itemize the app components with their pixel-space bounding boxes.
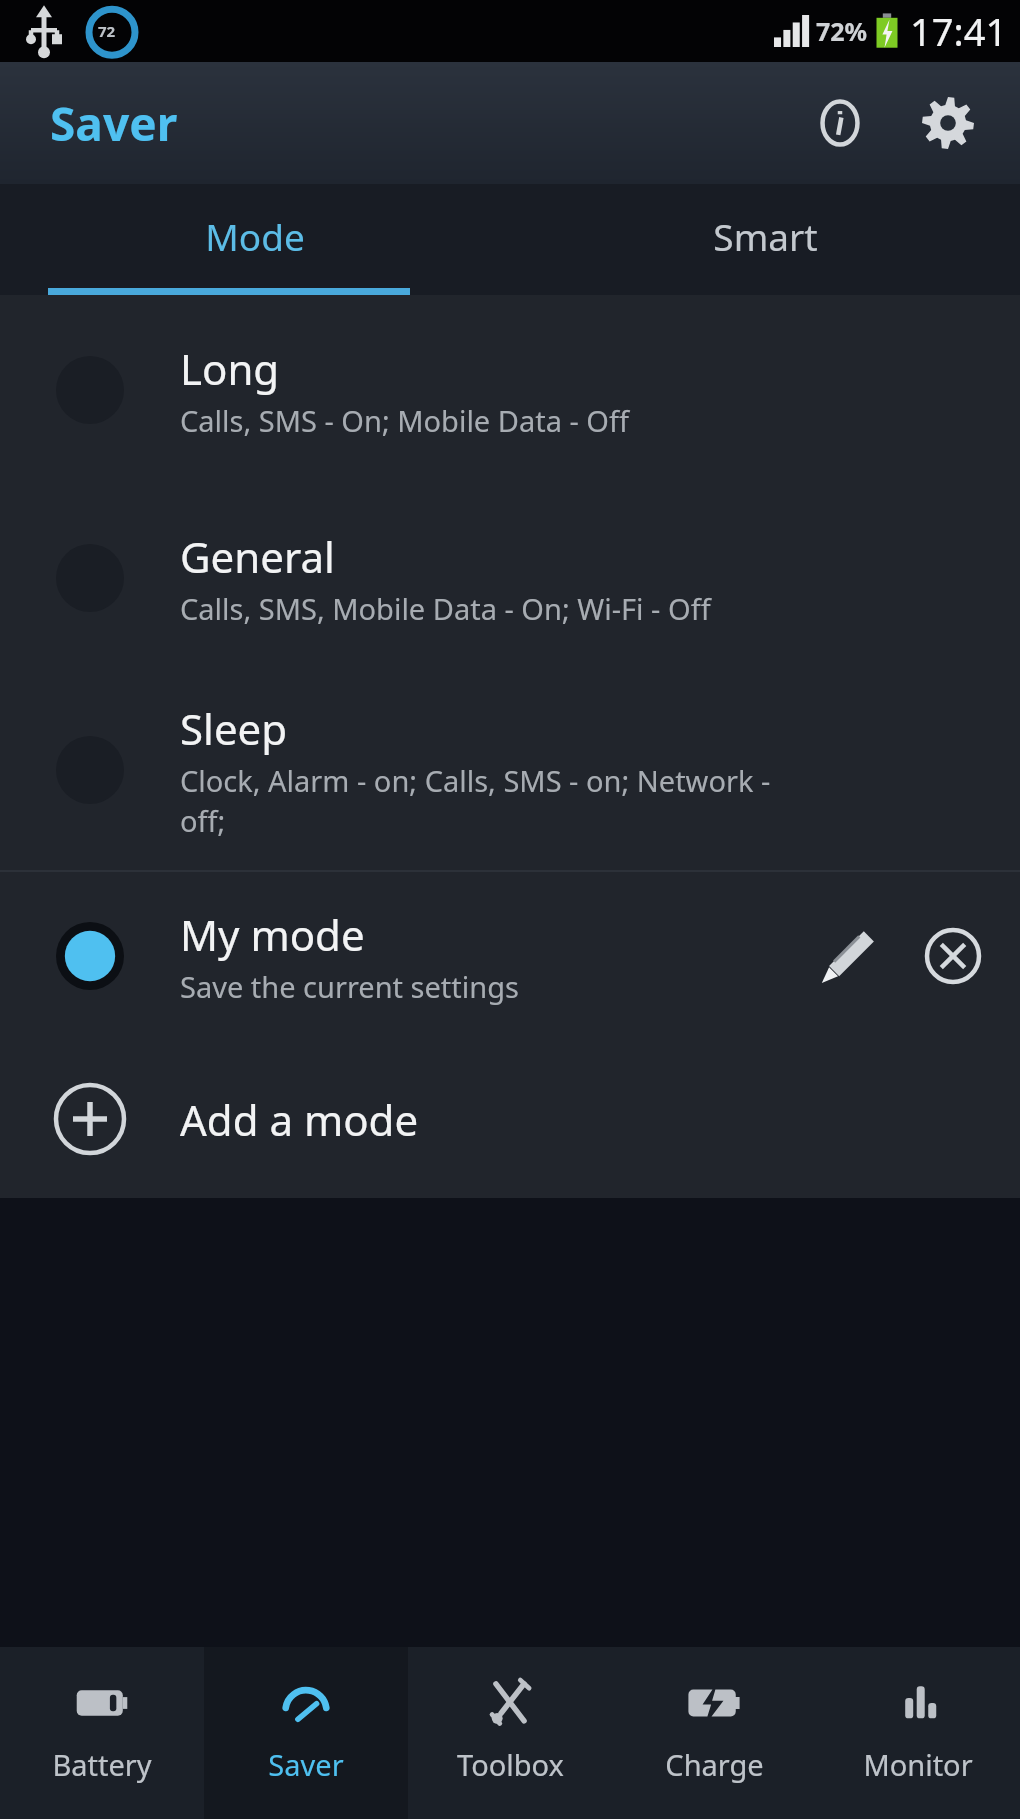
staticText: Calls, SMS - On; Mobile Data - Off [180,401,629,440]
button[interactable]: Info [796,79,884,167]
button[interactable]: Monitor [816,1647,1020,1819]
staticText: Save the current settings [180,967,519,1006]
staticText: My mode [180,906,365,963]
button[interactable]: Sleep [0,670,1020,870]
staticText: Mode [205,211,305,261]
staticText: Smart [713,211,818,261]
button[interactable]: Delete mode [900,903,1006,1009]
button[interactable]: Charge [612,1647,816,1819]
staticText: Saver [50,92,178,155]
staticText: Clock, Alarm - on; Calls, SMS - on; Netw… [180,761,771,841]
staticText: Add a mode [180,1091,419,1148]
staticText: Long [180,340,280,397]
staticText: Charge [665,1745,764,1784]
staticText: 72 [98,21,116,41]
button[interactable]: Add a mode [0,1040,1020,1198]
staticText: Saver [268,1745,344,1784]
staticText: Toolbox [457,1745,564,1784]
staticText: Calls, SMS, Mobile Data - On; Wi-Fi - Of… [180,589,711,628]
staticText: General [180,528,335,585]
button[interactable]: General [0,485,1020,670]
button[interactable]: Smart [510,184,1020,288]
button[interactable]: Settings [904,79,992,167]
staticText: Monitor [863,1745,973,1784]
button[interactable]: Saver [204,1647,408,1819]
button[interactable]: Edit mode [794,903,900,1009]
button[interactable]: Toolbox [408,1647,612,1819]
button[interactable]: My mode [0,872,1020,1040]
staticText: 72% [816,14,868,48]
button[interactable]: Battery [0,1647,204,1819]
staticText: 17:41 [910,5,1008,57]
staticText: Battery [52,1745,152,1784]
button[interactable]: Mode [0,184,510,288]
staticText: Sleep [180,700,288,757]
button[interactable]: Long [0,295,1020,485]
